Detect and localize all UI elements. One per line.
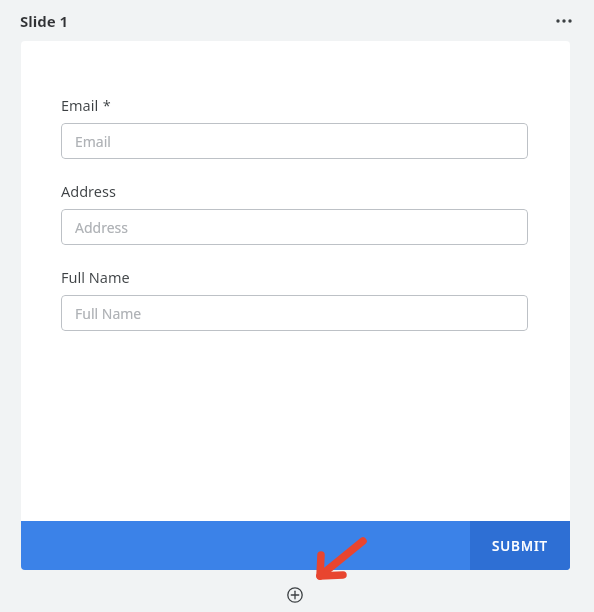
button[interactable]: Address: [61, 209, 528, 245]
button[interactable]: Full Name: [61, 295, 528, 331]
staticText: Email: [75, 132, 111, 151]
button[interactable]: Add slide: [279, 579, 311, 611]
button[interactable]: SUBMIT: [470, 521, 570, 570]
staticText: Email: [61, 95, 99, 115]
staticText: SUBMIT: [492, 537, 548, 555]
button[interactable]: More options: [546, 3, 582, 39]
staticText: *: [99, 95, 111, 115]
button[interactable]: Email: [61, 123, 528, 159]
staticText: Full Name: [61, 267, 130, 287]
staticText: Address: [61, 181, 116, 201]
staticText: Slide 1: [20, 11, 69, 31]
staticText: Full Name: [75, 304, 142, 323]
staticText: Address: [75, 218, 128, 237]
